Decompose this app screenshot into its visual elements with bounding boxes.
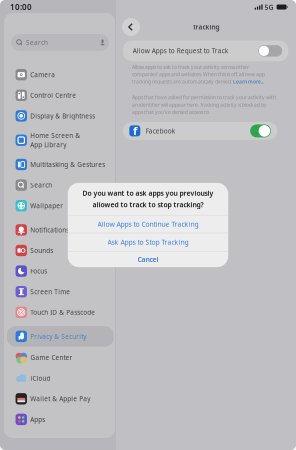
- button[interactable]: Multitasking & Gestures: [7, 154, 114, 175]
- staticText: Touch ID & Passcode: [30, 308, 95, 317]
- staticText: Ask Apps to Stop Tracking: [107, 238, 188, 247]
- button[interactable]: Allow Apps to Continue Tracking: [68, 215, 228, 233]
- staticText: App Library: [30, 140, 66, 149]
- staticText: allowed to track to stop tracking?: [92, 200, 203, 209]
- staticText: Learn more...: [233, 78, 264, 85]
- staticText: Cancel: [137, 255, 158, 264]
- button[interactable]: Search: [11, 34, 109, 51]
- staticText: Game Center: [30, 353, 72, 362]
- staticText: Multitasking & Gestures: [30, 160, 105, 169]
- staticText: Camera: [30, 70, 55, 79]
- staticText: Allow Apps to Continue Tracking: [97, 219, 198, 229]
- staticText: tracking requests are automatically deni…: [132, 78, 233, 85]
- staticText: Screen Time: [30, 287, 70, 296]
- staticText: Wallpaper: [30, 201, 63, 210]
- button[interactable]: Display & Brightness: [7, 106, 114, 126]
- button[interactable]: Wallpaper: [7, 195, 114, 216]
- staticText: Home Screen &: [30, 131, 80, 140]
- staticText: companies' apps and websites. When this …: [132, 71, 265, 78]
- staticText: Facebook: [146, 127, 175, 135]
- staticText: Apps that have asked for permission to t…: [132, 94, 276, 101]
- button[interactable]: Camera: [7, 64, 114, 85]
- button[interactable]: iCloud: [7, 368, 114, 388]
- button[interactable]: Back: [121, 17, 141, 37]
- staticText: apps that you've denied access to.: [132, 109, 210, 115]
- staticText: Apps: [30, 415, 45, 424]
- staticText: an identifier will appear here. Tracking…: [132, 101, 267, 108]
- staticText: Tracking: [192, 23, 219, 31]
- staticText: Allow Apps to Request to Track: [133, 46, 228, 55]
- button[interactable]: Sounds: [7, 240, 114, 261]
- staticText: Allow apps to ask to track your activity…: [132, 64, 249, 70]
- staticText: Privacy & Security: [30, 332, 86, 341]
- button[interactable]: Screen Time: [7, 281, 114, 302]
- button[interactable]: Toggle on: [250, 124, 271, 137]
- button[interactable]: f: [123, 122, 277, 140]
- button[interactable]: Allow Apps to Request to Track: [123, 40, 288, 61]
- staticText: Search: [26, 38, 48, 47]
- staticText: Wallet & Apple Pay: [30, 394, 90, 403]
- staticText: Focus: [30, 267, 47, 275]
- button[interactable]: Notifications: [7, 220, 114, 240]
- staticText: Notifications: [30, 225, 69, 234]
- button[interactable]: Control Centre: [7, 85, 114, 106]
- staticText: 5G: [265, 2, 274, 12]
- staticText: Search: [30, 181, 52, 189]
- button[interactable]: Privacy & Security: [7, 326, 114, 347]
- staticText: f: [133, 123, 137, 138]
- staticText: Do you want to ask apps you previously: [82, 188, 213, 198]
- staticText: Display & Brightness: [30, 111, 95, 120]
- button[interactable]: Toggle off: [258, 45, 282, 57]
- staticText: Control Centre: [30, 91, 76, 100]
- button[interactable]: Cancel: [68, 252, 228, 267]
- button[interactable]: Focus: [7, 261, 114, 281]
- button[interactable]: Home Screen &: [7, 126, 114, 154]
- button[interactable]: Apps: [7, 409, 114, 430]
- staticText: iCloud: [30, 374, 50, 382]
- staticText: Sounds: [30, 246, 53, 255]
- staticText: 10:00: [10, 2, 32, 12]
- button[interactable]: Wallet & Apple Pay: [7, 388, 114, 409]
- button[interactable]: Game Center: [7, 347, 114, 368]
- button[interactable]: Touch ID & Passcode: [7, 302, 114, 323]
- button[interactable]: Ask Apps to Stop Tracking: [68, 233, 228, 251]
- button[interactable]: Search: [7, 175, 114, 195]
